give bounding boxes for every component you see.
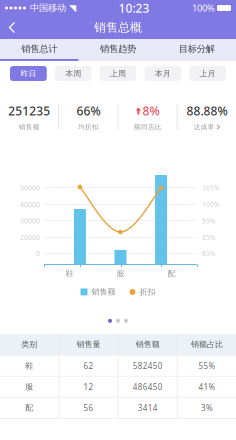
button[interactable]: 昨日 [10, 66, 47, 81]
staticText: 40000 [20, 200, 40, 209]
staticText: 销额占比 [191, 339, 223, 349]
staticText: 30000 [20, 216, 40, 225]
staticText: 本周 [65, 69, 81, 78]
staticText: 251235 [8, 103, 50, 119]
staticText: 上周 [110, 69, 126, 78]
staticText: 8% [142, 103, 159, 119]
staticText: 达成率 [193, 123, 214, 131]
staticText: 62 [83, 360, 93, 371]
staticText: 83% [202, 249, 216, 258]
staticText: 销售量 [76, 339, 100, 349]
staticText: 配 [25, 403, 33, 413]
staticText: 582450 [133, 360, 163, 371]
staticText: 50000 [20, 183, 40, 192]
staticText: 3% [201, 402, 213, 413]
button[interactable]: 销售总计 [0, 39, 79, 59]
button[interactable]: 上月 [189, 66, 226, 81]
staticText: 20000 [20, 233, 40, 242]
staticText: 41% [198, 381, 215, 392]
staticText: 销售趋势 [100, 43, 136, 55]
staticText: 服 [25, 382, 33, 392]
staticText: 鞋 [25, 361, 33, 371]
staticText: 66% [76, 103, 100, 119]
button[interactable]: Back [0, 16, 25, 39]
staticText: 上月 [200, 69, 216, 78]
staticText: 目标分解 [179, 43, 215, 55]
button[interactable]: 本月 [144, 66, 181, 81]
staticText: 本月 [155, 69, 171, 78]
staticText: 486450 [133, 381, 163, 392]
staticText: 85% [202, 233, 216, 242]
staticText: 类别 [21, 339, 37, 349]
staticText: 中国移动 [30, 2, 66, 14]
staticText: 12 [83, 381, 93, 392]
staticText: 100% [202, 200, 220, 209]
staticText: 10:23 [118, 0, 149, 16]
staticText: 3414 [138, 402, 158, 413]
staticText: 服 [116, 269, 124, 278]
staticText: 0 [36, 249, 40, 258]
staticText: 配 [167, 269, 175, 278]
staticText: 额同店比 [134, 123, 162, 131]
staticText: 昨日 [20, 69, 36, 78]
button[interactable]: 目标分解 [157, 39, 236, 59]
button[interactable]: 销售趋势 [79, 39, 157, 59]
staticText: 销售额 [19, 123, 40, 131]
staticText: 销售额 [91, 287, 115, 297]
staticText: 鞋 [65, 269, 73, 278]
staticText: 105% [202, 183, 220, 192]
staticText: 折扣 [139, 287, 155, 297]
staticText: 销售总计 [21, 43, 57, 55]
staticText: 88.88% [186, 103, 227, 119]
staticText: 均折扣 [78, 123, 99, 131]
staticText: 100% [192, 2, 215, 14]
staticText: ◥ [69, 3, 76, 13]
staticText: 55% [198, 360, 215, 371]
staticText: 销售额 [136, 339, 160, 349]
button[interactable]: 上周 [100, 66, 136, 81]
staticText: 56 [83, 402, 93, 413]
staticText: 95% [202, 216, 216, 225]
staticText: 销售总概 [94, 20, 142, 35]
button[interactable]: 本周 [55, 66, 92, 81]
